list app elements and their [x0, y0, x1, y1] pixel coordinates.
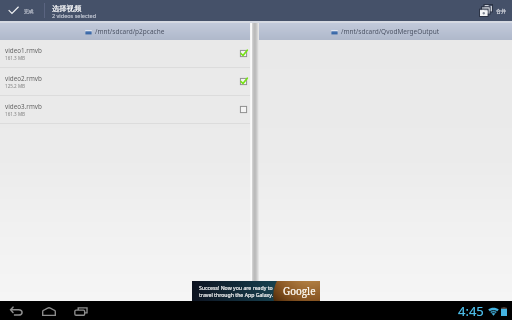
staticText: 完成 — [24, 8, 34, 14]
button[interactable]: Back — [1, 301, 33, 320]
staticText: /mnt/sdcard/QvodMergeOutput — [341, 27, 440, 36]
button[interactable]: video3.rmvb — [0, 96, 250, 123]
button[interactable]: video2.rmvb — [0, 68, 250, 95]
button[interactable]: video1.rmvb — [0, 40, 250, 67]
button[interactable]: 合并 — [474, 0, 512, 21]
staticText: 161.3 MB — [5, 111, 26, 117]
button[interactable]: Home — [33, 301, 65, 320]
staticText: 4:45 — [458, 302, 484, 320]
staticText: 125.2 MB — [5, 83, 26, 89]
staticText: 161.3 MB — [5, 55, 26, 61]
staticText: 2 videos selected — [52, 12, 97, 19]
staticText: video2.rmvb — [5, 74, 42, 83]
button[interactable]: 完成 — [0, 0, 44, 21]
staticText: Success! Now you are ready to — [199, 284, 273, 291]
staticText: video1.rmvb — [5, 46, 42, 55]
staticText: 合并 — [496, 8, 506, 14]
staticText: video3.rmvb — [5, 102, 42, 111]
staticText: /mnt/sdcard/p2pcache — [95, 27, 165, 36]
button[interactable]: Recent apps — [65, 301, 97, 320]
staticText: travel through the App Galaxy. — [199, 291, 274, 298]
staticText: 选择视频 — [52, 4, 82, 13]
staticText: Google — [283, 284, 316, 298]
button[interactable]: Success! Now you are ready to — [192, 281, 320, 301]
